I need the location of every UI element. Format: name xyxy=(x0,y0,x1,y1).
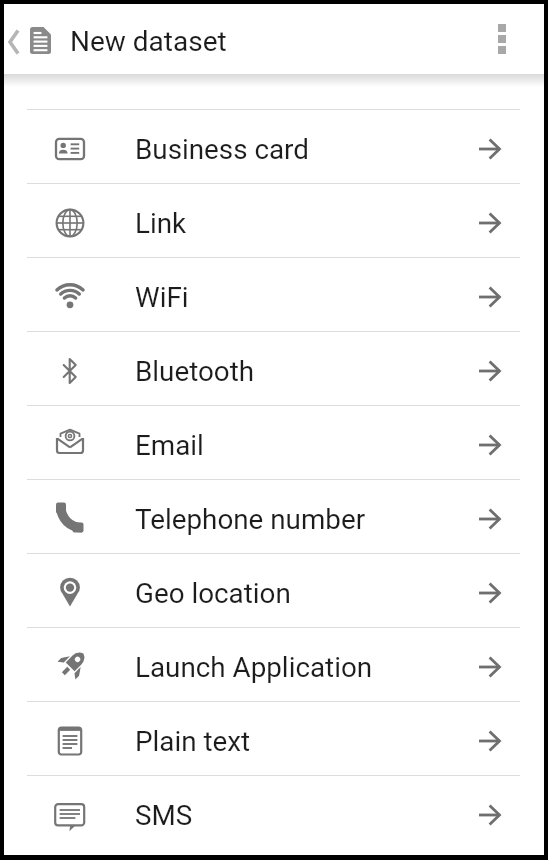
button[interactable]: SMS xyxy=(4,776,544,849)
button[interactable]: Launch Application xyxy=(4,628,544,701)
staticText: WiFi xyxy=(135,281,189,314)
button[interactable]: Telephone number xyxy=(4,480,544,553)
staticText: Plain text xyxy=(135,725,251,758)
staticText: Link xyxy=(135,207,187,240)
button[interactable] xyxy=(7,28,21,56)
staticText: SMS xyxy=(135,799,193,832)
staticText: Geo location xyxy=(135,577,291,610)
button[interactable]: Business card xyxy=(4,110,544,183)
button[interactable]: Plain text xyxy=(4,702,544,775)
staticText: Telephone number xyxy=(135,503,366,536)
staticText: New dataset xyxy=(70,25,227,58)
button[interactable]: Bluetooth xyxy=(4,332,544,405)
button[interactable]: Geo location xyxy=(4,554,544,627)
button[interactable] xyxy=(498,24,506,54)
staticText: Bluetooth xyxy=(135,355,255,388)
button[interactable]: Link xyxy=(4,184,544,257)
staticText: Launch Application xyxy=(135,651,373,684)
button[interactable]: WiFi xyxy=(4,258,544,331)
button[interactable]: Email xyxy=(4,406,544,479)
staticText: Email xyxy=(135,429,204,462)
staticText: Business card xyxy=(135,133,309,166)
